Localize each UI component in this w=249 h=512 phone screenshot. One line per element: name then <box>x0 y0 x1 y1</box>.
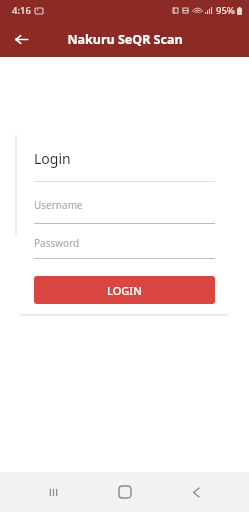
button[interactable] <box>0 135 17 235</box>
staticText: Nakuru SeQR Scan <box>67 31 183 48</box>
button[interactable]: Recent apps <box>35 474 71 510</box>
staticText: Login <box>34 149 71 168</box>
button[interactable]: Back <box>178 474 214 510</box>
button[interactable]: LOGIN <box>34 276 215 304</box>
staticText: 4:16 <box>12 4 31 17</box>
button[interactable]: Home <box>107 474 143 510</box>
staticText: 95% <box>216 4 235 17</box>
staticText: Password <box>34 236 80 250</box>
button[interactable]: Username <box>34 182 215 224</box>
button[interactable]: Back <box>6 24 36 54</box>
button[interactable]: Password <box>34 224 215 259</box>
staticText: Username <box>34 198 83 212</box>
staticText: LOGIN <box>107 283 142 298</box>
